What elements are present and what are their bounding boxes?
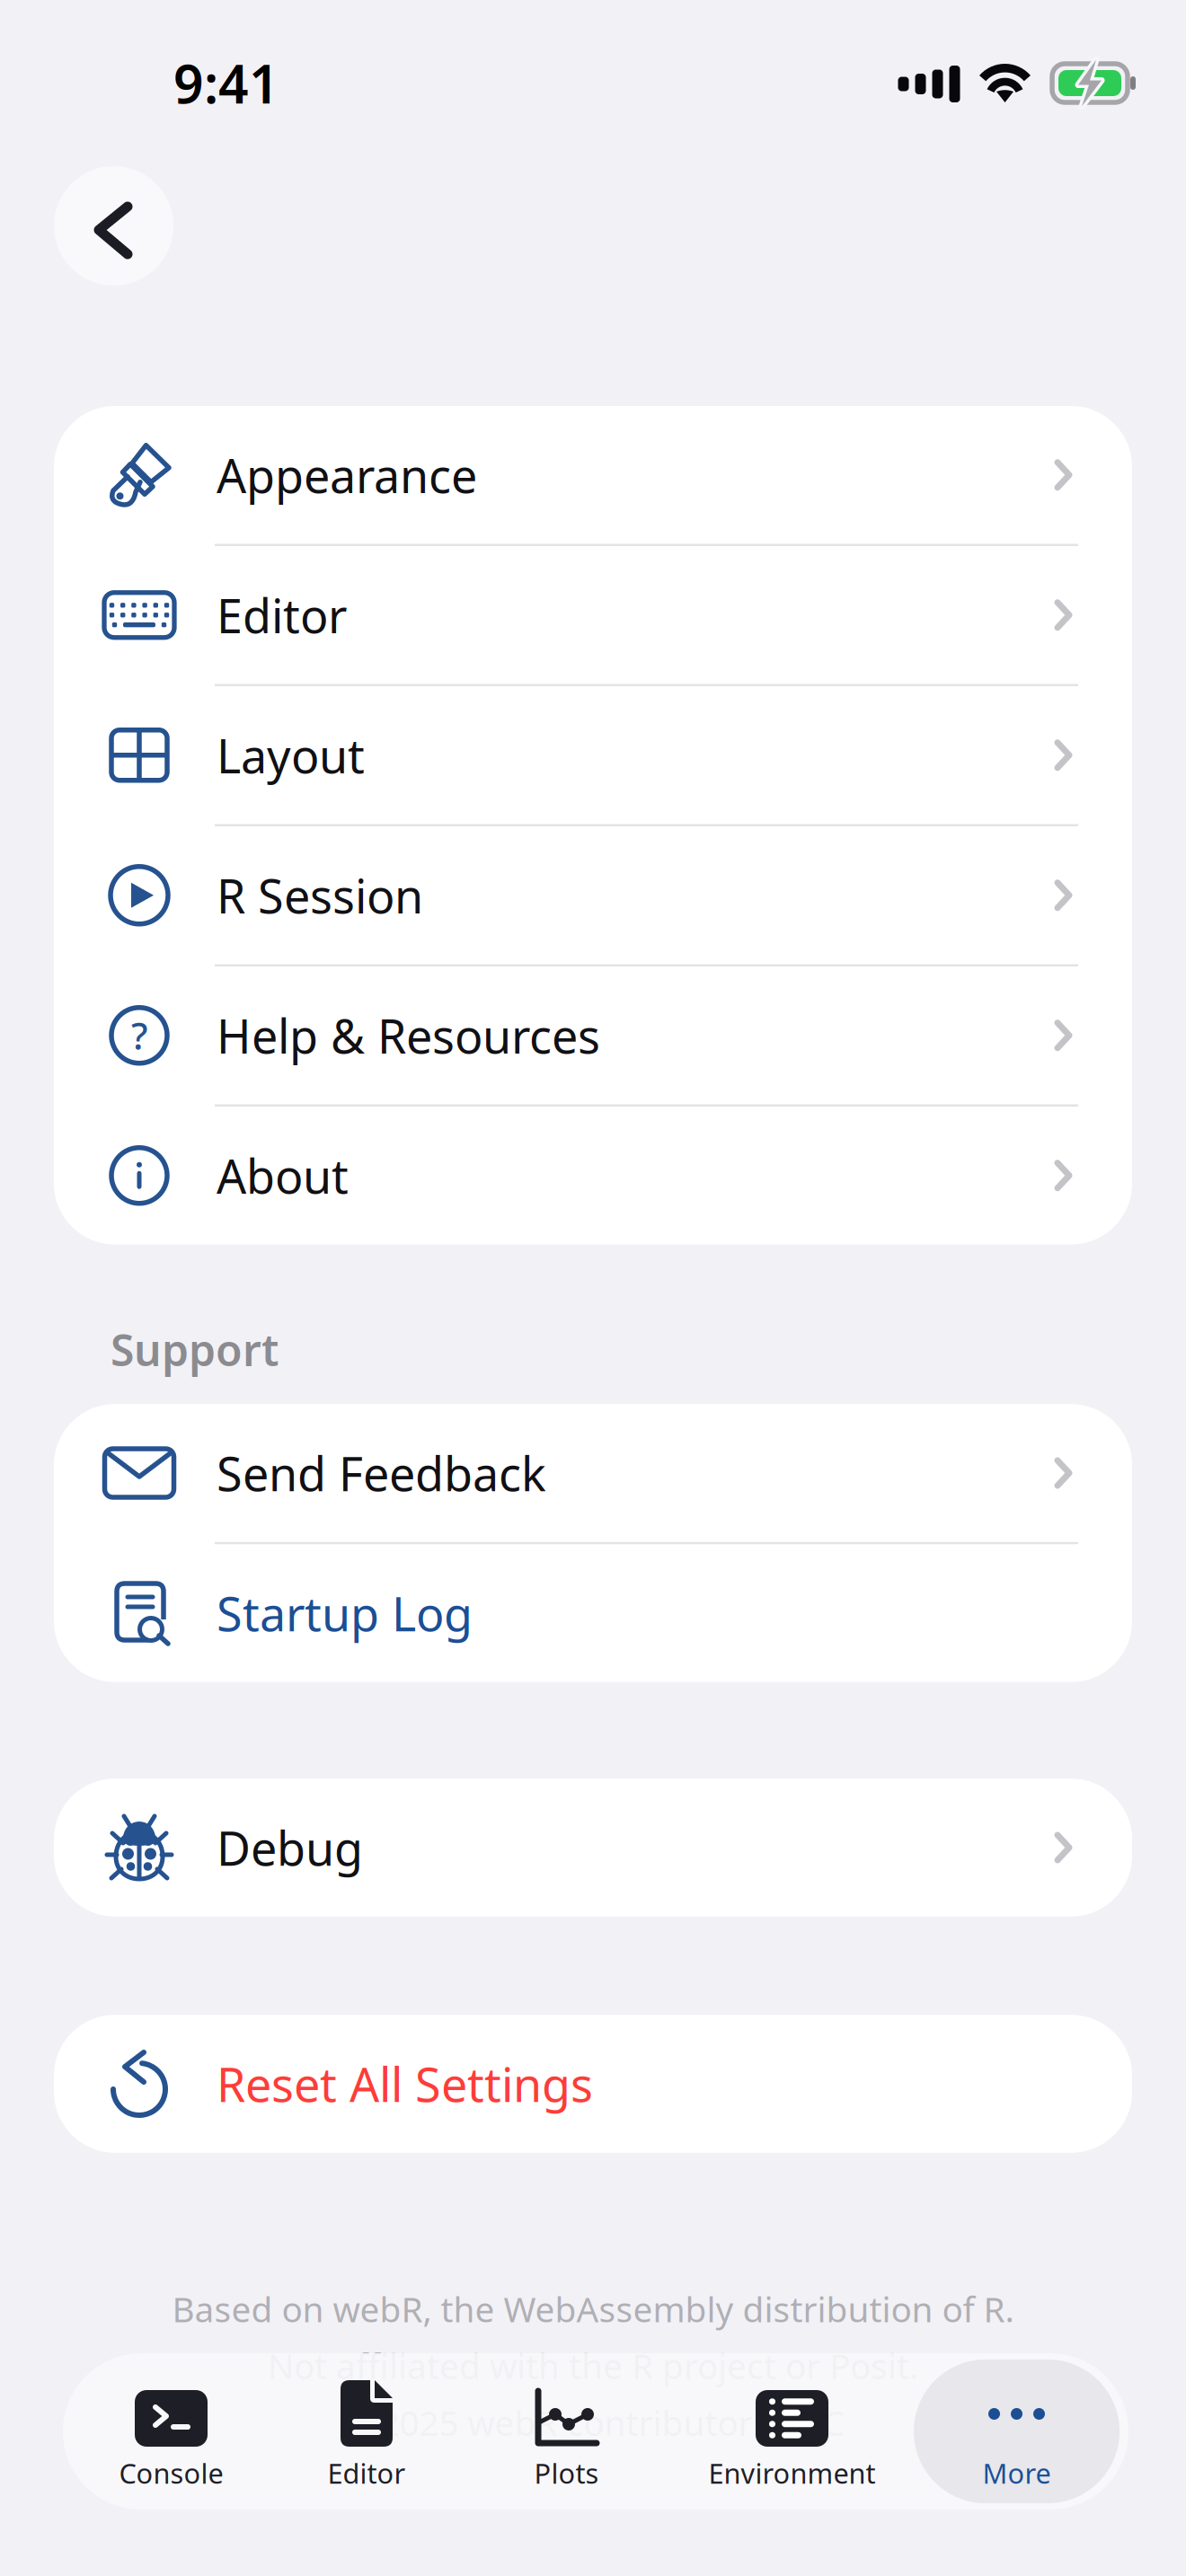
staticText: Not affiliated with the R project or Pos… <box>268 2343 918 2389</box>
staticText: Plots <box>534 2455 599 2491</box>
staticText: Support <box>111 1321 279 1378</box>
button[interactable]: Debug <box>54 1779 1132 1916</box>
staticText: Reset All Settings <box>217 2053 593 2115</box>
button[interactable]: ? <box>54 966 1132 1104</box>
staticText: Layout <box>217 724 365 786</box>
button[interactable]: Appearance <box>54 406 1132 544</box>
button[interactable]: About <box>54 1107 1132 1244</box>
button[interactable]: Editor <box>272 2353 461 2510</box>
button[interactable]: R Session <box>54 826 1132 964</box>
staticText: Debug <box>217 1817 363 1879</box>
staticText: Environment <box>708 2455 876 2491</box>
staticText: 9:41 <box>173 48 279 118</box>
staticText: Based on webR, the WebAssembly distribut… <box>172 2286 1014 2332</box>
staticText: More <box>982 2455 1051 2491</box>
staticText: Appearance <box>217 444 477 506</box>
button[interactable]: Reset All Settings <box>54 2015 1132 2153</box>
staticText: R Session <box>217 864 423 926</box>
button[interactable]: Plots <box>461 2353 672 2510</box>
button[interactable]: Send Feedback <box>54 1404 1132 1542</box>
staticText: Startup Log <box>217 1582 473 1644</box>
button[interactable]: Environment <box>672 2353 912 2510</box>
button[interactable]: Startup Log <box>54 1544 1132 1682</box>
staticText: Editor <box>327 2455 406 2491</box>
staticText: Console <box>119 2455 223 2491</box>
staticText: © 2025 webR contributors, LLC <box>342 2399 844 2445</box>
button[interactable]: Console <box>70 2353 272 2510</box>
button[interactable]: Editor <box>54 546 1132 684</box>
staticText: Editor <box>217 584 347 646</box>
staticText: Send Feedback <box>217 1442 546 1504</box>
button[interactable]: More <box>912 2353 1121 2510</box>
staticText: ? <box>131 1011 147 1060</box>
button[interactable]: Back <box>54 166 173 286</box>
staticText: Help & Resources <box>217 1004 600 1066</box>
button[interactable]: Layout <box>54 686 1132 824</box>
staticText: About <box>217 1144 349 1207</box>
